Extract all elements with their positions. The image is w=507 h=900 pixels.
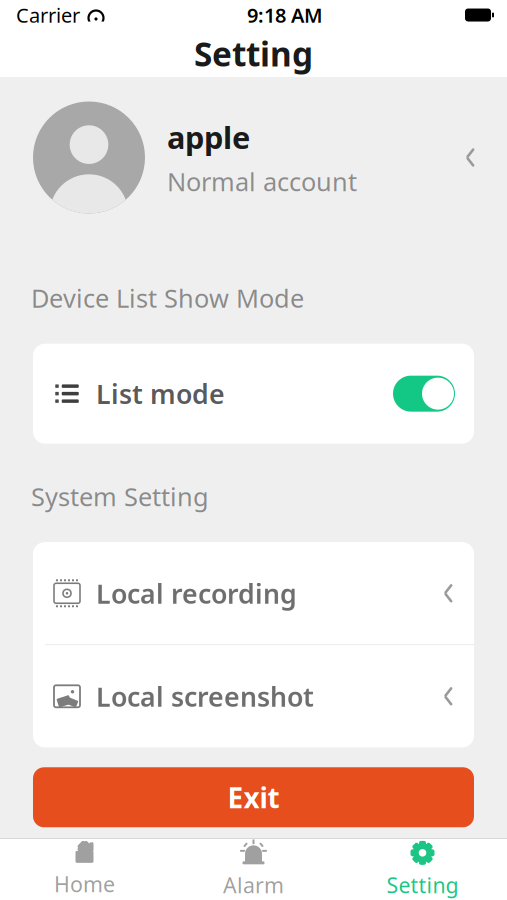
staticText: Alarm bbox=[223, 871, 284, 899]
staticText: Home bbox=[54, 870, 115, 898]
button[interactable]: List mode bbox=[33, 344, 474, 444]
staticText: Exit bbox=[227, 779, 279, 816]
button[interactable]: Alarm bbox=[169, 839, 338, 900]
staticText: Local recording bbox=[96, 576, 297, 611]
staticText: List mode bbox=[96, 376, 225, 411]
staticText: apple bbox=[167, 117, 250, 157]
button[interactable]: apple bbox=[0, 90, 507, 225]
staticText: System Setting bbox=[31, 480, 209, 513]
button[interactable]: Exit bbox=[33, 767, 474, 827]
button[interactable]: Local recording bbox=[33, 542, 474, 644]
staticText: Normal account bbox=[167, 164, 357, 198]
staticText: Setting bbox=[194, 31, 313, 76]
staticText: Local screenshot bbox=[96, 679, 314, 714]
staticText: Device List Show Mode bbox=[31, 281, 304, 315]
staticText: 9:18 AM bbox=[247, 2, 323, 28]
button[interactable]: Local screenshot bbox=[33, 645, 474, 747]
button[interactable]: Home bbox=[0, 839, 169, 900]
staticText: Setting bbox=[386, 871, 458, 899]
button[interactable]: Setting bbox=[338, 839, 507, 900]
staticText: Carrier bbox=[16, 2, 80, 28]
